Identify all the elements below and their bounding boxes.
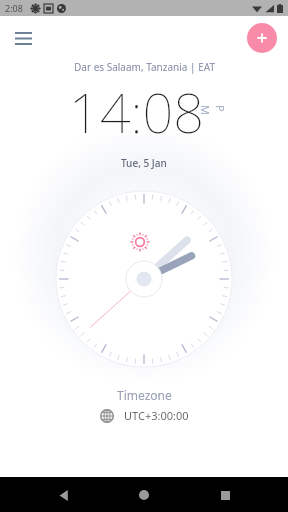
- staticText: PM: [198, 105, 228, 119]
- button[interactable]: Analog clock: [56, 191, 232, 367]
- button[interactable]: Open navigation menu: [7, 22, 39, 54]
- button[interactable]: Add city: [247, 23, 277, 53]
- other: Timezone globe: [100, 409, 114, 423]
- button[interactable]: Back: [47, 478, 81, 512]
- staticText: Timezone: [117, 387, 172, 403]
- staticText: 14:08: [69, 75, 204, 149]
- button[interactable]: Recent apps: [208, 478, 242, 512]
- staticText: 2:08: [5, 2, 23, 14]
- staticText: Tue, 5 Jan: [121, 156, 167, 170]
- staticText: UTC+3:00:00: [124, 408, 189, 423]
- staticText: Dar es Salaam, Tanzania | EAT: [74, 60, 215, 74]
- button[interactable]: Home: [127, 478, 161, 512]
